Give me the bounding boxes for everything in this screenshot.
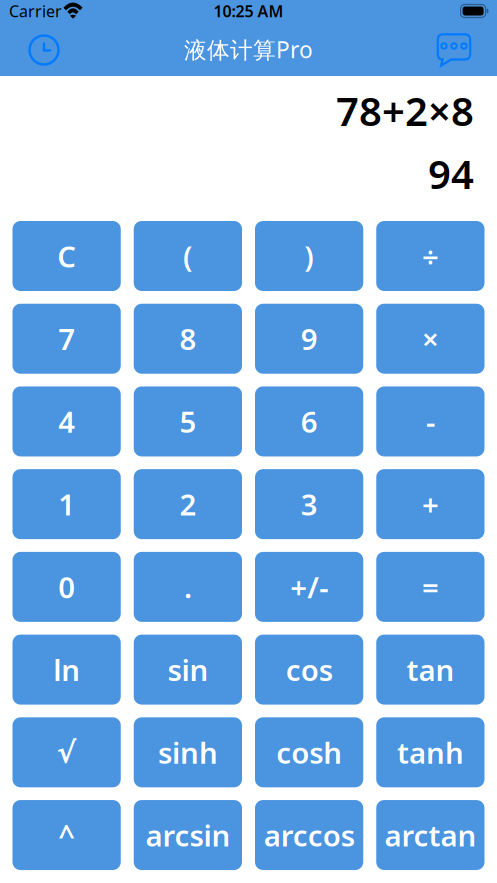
staticText: sin — [167, 650, 208, 689]
staticText: = — [422, 567, 439, 606]
button[interactable]: ln — [12, 635, 121, 705]
button[interactable]: √ — [12, 717, 121, 787]
staticText: ÷ — [422, 236, 439, 275]
button[interactable]: ÷ — [376, 221, 484, 291]
staticText: 94 — [428, 147, 474, 200]
staticText: cos — [286, 650, 333, 689]
button[interactable]: +/- — [255, 552, 363, 622]
button[interactable]: cosh — [255, 717, 363, 787]
staticText: arccos — [264, 816, 355, 855]
button[interactable]: arcsin — [134, 800, 242, 870]
button[interactable]: cos — [255, 635, 363, 705]
button[interactable]: . — [134, 552, 242, 622]
staticText: 5 — [179, 402, 196, 441]
button[interactable]: tanh — [376, 717, 484, 787]
button[interactable]: - — [376, 386, 484, 456]
staticText: × — [422, 319, 439, 358]
button[interactable]: Messages — [429, 18, 479, 78]
button[interactable]: ) — [255, 221, 363, 291]
staticText: C — [57, 236, 76, 275]
staticText: ln — [53, 650, 80, 689]
staticText: ^ — [58, 816, 75, 855]
staticText: 78+2×8 — [336, 84, 474, 137]
staticText: tan — [406, 650, 454, 689]
staticText: √ — [57, 736, 77, 769]
staticText: + — [422, 485, 439, 524]
staticText: 0 — [58, 567, 75, 606]
button[interactable]: 8 — [134, 304, 242, 374]
staticText: - — [426, 402, 435, 441]
staticText: 2 — [179, 485, 196, 524]
staticText: +/- — [290, 567, 328, 606]
button[interactable]: = — [376, 552, 484, 622]
button[interactable]: × — [376, 304, 484, 374]
button[interactable]: ( — [134, 221, 242, 291]
button[interactable]: 3 — [255, 469, 363, 539]
staticText: 9 — [301, 319, 318, 358]
staticText: 4 — [58, 402, 75, 441]
staticText: tanh — [397, 733, 464, 772]
button[interactable]: ^ — [12, 800, 121, 870]
button[interactable]: arccos — [255, 800, 363, 870]
button[interactable]: 7 — [12, 304, 121, 374]
staticText: 液体计算Pro — [184, 34, 313, 64]
staticText: ) — [304, 236, 314, 275]
button[interactable]: sin — [134, 635, 242, 705]
staticText: 8 — [179, 319, 196, 358]
button[interactable]: arctan — [376, 800, 484, 870]
staticText: . — [184, 567, 192, 606]
button[interactable]: 4 — [12, 386, 121, 456]
staticText: arctan — [384, 816, 476, 855]
staticText: 7 — [58, 319, 75, 358]
button[interactable]: tan — [376, 635, 484, 705]
button[interactable]: 6 — [255, 386, 363, 456]
staticText: arcsin — [145, 816, 230, 855]
staticText: 1 — [58, 485, 75, 524]
button[interactable]: 5 — [134, 386, 242, 456]
button[interactable]: 2 — [134, 469, 242, 539]
button[interactable]: 0 — [12, 552, 121, 622]
button[interactable]: + — [376, 469, 484, 539]
staticText: 10:25 AM — [213, 0, 283, 22]
staticText: ( — [183, 236, 193, 275]
staticText: Carrier — [9, 0, 62, 22]
button[interactable]: sinh — [134, 717, 242, 787]
button[interactable]: C — [12, 221, 121, 291]
staticText: 6 — [301, 402, 318, 441]
staticText: 3 — [301, 485, 318, 524]
button[interactable]: 1 — [12, 469, 121, 539]
button[interactable]: History — [19, 18, 69, 78]
staticText: cosh — [276, 733, 342, 772]
staticText: sinh — [158, 733, 218, 772]
button[interactable]: 9 — [255, 304, 363, 374]
